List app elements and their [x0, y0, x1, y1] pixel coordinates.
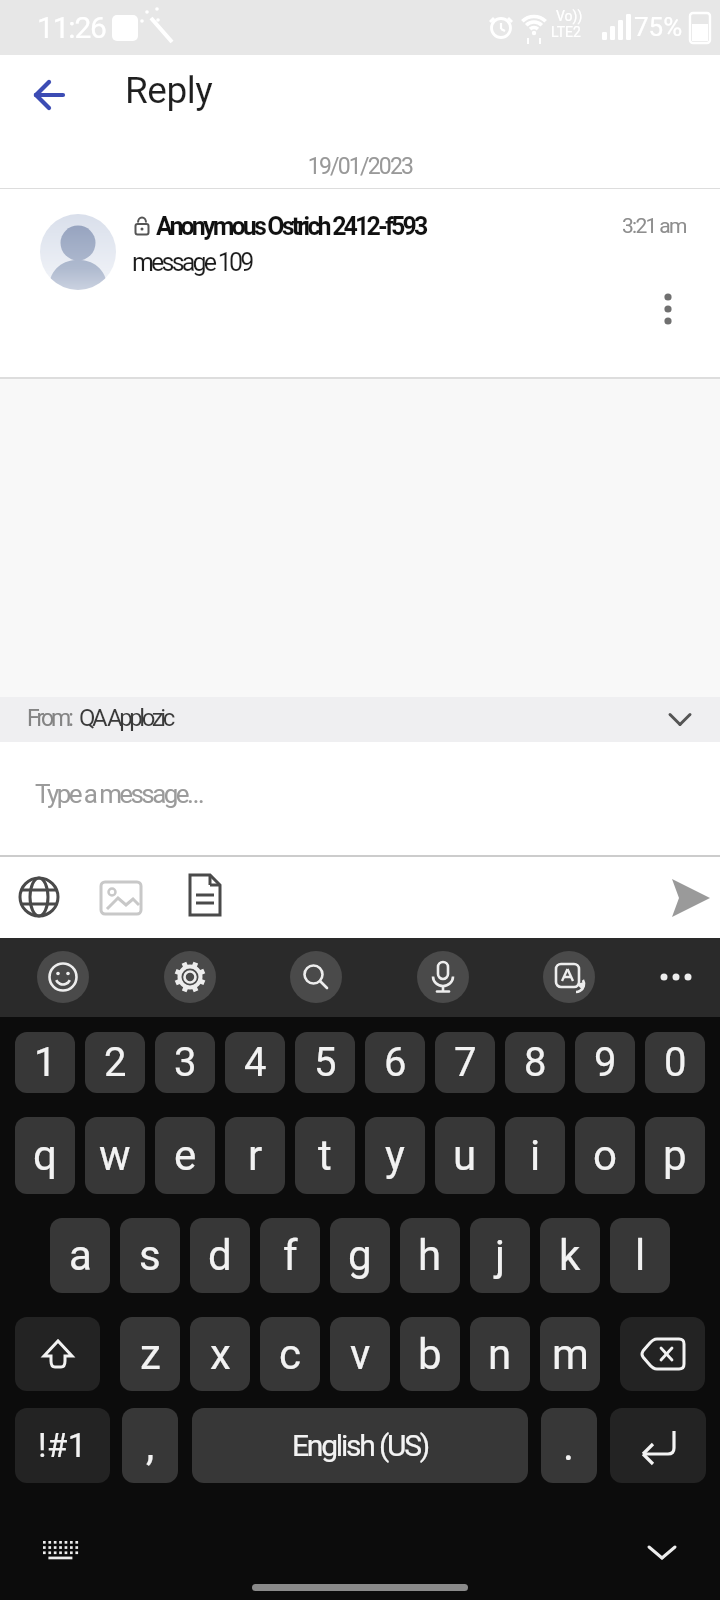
button[interactable]: [662, 877, 714, 919]
button[interactable]: i: [505, 1117, 565, 1194]
staticText: 11:26: [37, 10, 106, 45]
button[interactable]: .: [541, 1408, 597, 1483]
button[interactable]: Anonymous Ostrich 2412-f593: [0, 189, 720, 377]
staticText: k: [559, 1231, 581, 1280]
staticText: Vo)): [556, 8, 583, 24]
staticText: j: [495, 1231, 506, 1280]
staticText: 0: [664, 1039, 687, 1086]
staticText: Anonymous Ostrich 2412-f593: [156, 212, 426, 241]
button[interactable]: s: [120, 1218, 180, 1293]
button[interactable]: [35, 1532, 87, 1574]
staticText: 4: [244, 1039, 267, 1086]
button[interactable]: 6: [365, 1032, 425, 1093]
button[interactable]: d: [190, 1218, 250, 1293]
staticText: u: [453, 1131, 477, 1180]
button[interactable]: [37, 951, 89, 1003]
staticText: 2: [104, 1039, 127, 1086]
button[interactable]: f: [260, 1218, 320, 1293]
staticText: ,: [146, 1421, 155, 1470]
button[interactable]: t: [295, 1117, 355, 1194]
button[interactable]: 2: [85, 1032, 145, 1093]
staticText: n: [488, 1330, 512, 1379]
staticText: o: [593, 1131, 617, 1180]
staticText: v: [350, 1330, 371, 1379]
button[interactable]: w: [85, 1117, 145, 1194]
staticText: 3:21 am: [622, 214, 686, 239]
button[interactable]: 0: [645, 1032, 705, 1093]
button[interactable]: [182, 873, 228, 919]
button[interactable]: u: [435, 1117, 495, 1194]
staticText: t: [318, 1131, 332, 1180]
staticText: From:: [27, 705, 71, 732]
button[interactable]: p: [645, 1117, 705, 1194]
staticText: 3: [174, 1039, 197, 1086]
staticText: b: [418, 1330, 442, 1379]
button[interactable]: [636, 1532, 688, 1574]
button[interactable]: [290, 951, 342, 1003]
button[interactable]: 8: [505, 1032, 565, 1093]
button[interactable]: [98, 875, 144, 921]
button[interactable]: !#1: [15, 1408, 110, 1483]
staticText: Type a message…: [35, 779, 202, 809]
button[interactable]: b: [400, 1317, 460, 1391]
button[interactable]: c: [260, 1317, 320, 1391]
staticText: a: [69, 1231, 92, 1280]
button[interactable]: Type a message…: [0, 742, 720, 855]
button[interactable]: z: [120, 1317, 180, 1391]
button[interactable]: English (US): [192, 1408, 528, 1483]
staticText: f: [283, 1231, 298, 1280]
button[interactable]: x: [190, 1317, 250, 1391]
button[interactable]: 7: [435, 1032, 495, 1093]
staticText: 6: [384, 1039, 407, 1086]
staticText: .: [563, 1421, 575, 1470]
button[interactable]: 3: [155, 1032, 215, 1093]
button[interactable]: 9: [575, 1032, 635, 1093]
button[interactable]: 1: [15, 1032, 75, 1093]
button[interactable]: [620, 1317, 705, 1391]
button[interactable]: [640, 281, 696, 337]
button[interactable]: [164, 951, 216, 1003]
button[interactable]: 5: [295, 1032, 355, 1093]
button[interactable]: m: [540, 1317, 600, 1391]
button[interactable]: [610, 1408, 706, 1483]
button[interactable]: h: [400, 1218, 460, 1293]
button[interactable]: [18, 65, 80, 125]
button[interactable]: n: [470, 1317, 530, 1391]
button[interactable]: g: [330, 1218, 390, 1293]
button[interactable]: r: [225, 1117, 285, 1194]
button[interactable]: ,: [122, 1408, 178, 1483]
button[interactable]: [15, 1317, 100, 1391]
staticText: g: [348, 1231, 372, 1280]
button[interactable]: e: [155, 1117, 215, 1194]
button[interactable]: y: [365, 1117, 425, 1194]
staticText: 8: [524, 1039, 547, 1086]
button[interactable]: v: [330, 1317, 390, 1391]
button[interactable]: [543, 951, 595, 1003]
button[interactable]: k: [540, 1218, 600, 1293]
staticText: p: [663, 1131, 687, 1180]
button[interactable]: q: [15, 1117, 75, 1194]
button[interactable]: l: [610, 1218, 670, 1293]
staticText: English (US): [292, 1428, 429, 1463]
staticText: w: [99, 1131, 131, 1180]
staticText: 5: [314, 1039, 337, 1086]
staticText: x: [210, 1330, 231, 1379]
button[interactable]: 4: [225, 1032, 285, 1093]
staticText: 1: [34, 1039, 57, 1086]
button[interactable]: From:: [0, 697, 720, 742]
staticText: !#1: [38, 1426, 87, 1465]
button[interactable]: j: [470, 1218, 530, 1293]
staticText: i: [530, 1131, 541, 1180]
staticText: c: [279, 1330, 301, 1379]
staticText: h: [418, 1231, 442, 1280]
staticText: Reply: [125, 69, 213, 112]
staticText: s: [139, 1231, 161, 1280]
button[interactable]: o: [575, 1117, 635, 1194]
button[interactable]: [417, 951, 469, 1003]
staticText: m: [552, 1330, 589, 1379]
button[interactable]: [17, 875, 62, 920]
staticText: e: [174, 1131, 197, 1180]
button[interactable]: a: [50, 1218, 110, 1293]
staticText: message 109: [132, 248, 252, 277]
button[interactable]: [650, 951, 702, 1003]
